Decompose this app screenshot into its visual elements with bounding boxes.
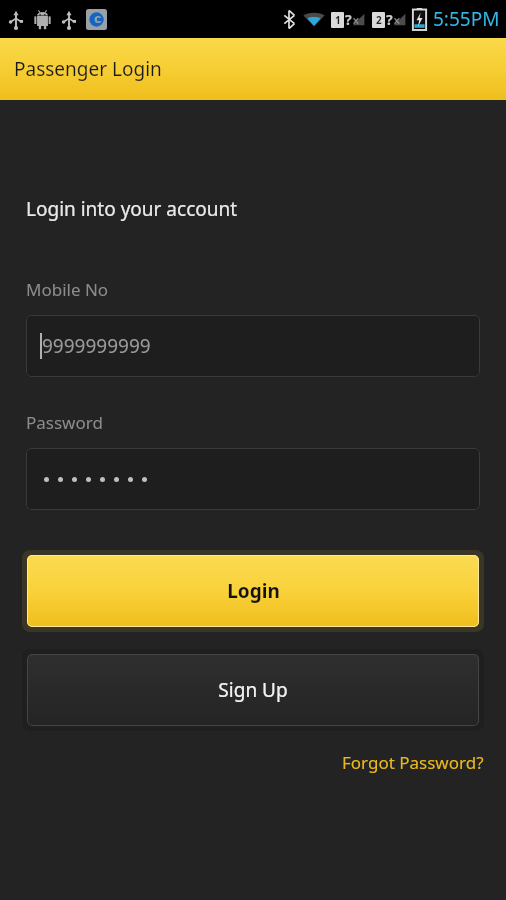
button[interactable]: 9999999999 [26, 315, 480, 377]
staticText: ? [386, 10, 393, 29]
staticText: Passenger Login [14, 56, 162, 82]
staticText: 5:55PM [433, 6, 500, 32]
staticText: Login [227, 578, 280, 604]
staticText: Login into your account [26, 196, 238, 222]
staticText: Password [26, 411, 103, 434]
staticText: 2 [376, 13, 382, 27]
button[interactable]: Forgot Password? [342, 747, 506, 778]
staticText: 9999999999 [42, 333, 151, 359]
button[interactable]: Sign Up [22, 649, 484, 731]
button[interactable]: Login [22, 550, 484, 632]
staticText: Sign Up [218, 677, 288, 703]
staticText: ? [345, 10, 352, 29]
staticText: Mobile No [26, 278, 109, 301]
button[interactable] [26, 448, 480, 510]
staticText: 1 [335, 13, 341, 27]
